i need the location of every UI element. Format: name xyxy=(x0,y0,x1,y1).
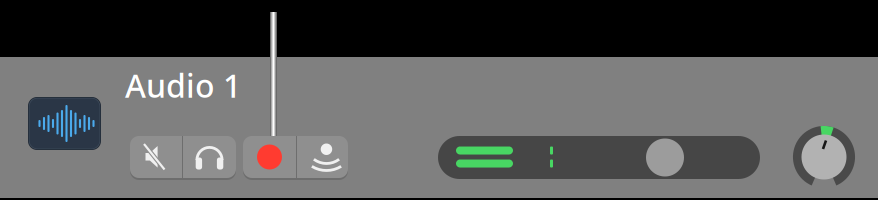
button[interactable]: Record enable xyxy=(243,136,296,178)
staticText: Audio 1 xyxy=(125,64,241,106)
button[interactable]: Input monitoring xyxy=(297,136,348,178)
button[interactable]: Mute xyxy=(130,136,182,178)
button[interactable]: Track icon xyxy=(28,97,101,150)
button[interactable]: Volume xyxy=(646,138,684,176)
button[interactable]: Headphone monitor xyxy=(183,136,236,178)
button[interactable]: Pan xyxy=(792,125,856,189)
